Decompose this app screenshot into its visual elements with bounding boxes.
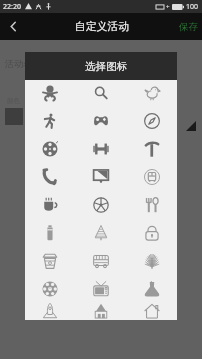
button[interactable]: icon0 bbox=[25, 79, 75, 107]
button[interactable]: icon2 bbox=[126, 79, 177, 107]
button[interactable]: icon3 bbox=[25, 107, 75, 135]
button[interactable]: icon14 bbox=[126, 191, 177, 219]
button[interactable]: icon13 bbox=[75, 191, 126, 219]
button[interactable]: Back bbox=[0, 13, 27, 40]
button[interactable]: icon7 bbox=[75, 135, 126, 163]
button[interactable]: 保存 bbox=[175, 21, 202, 33]
staticText: 100 bbox=[186, 2, 199, 12]
button[interactable]: icon24 bbox=[25, 303, 75, 319]
staticText: 自定义活动 bbox=[75, 20, 129, 34]
staticText: 保存 bbox=[179, 21, 198, 33]
button[interactable]: icon22 bbox=[75, 275, 126, 303]
button[interactable]: icon12 bbox=[25, 191, 75, 219]
button[interactable]: icon18 bbox=[25, 247, 75, 275]
staticText: 选择图标 bbox=[85, 60, 128, 73]
button[interactable]: icon17 bbox=[126, 219, 177, 247]
button[interactable]: icon26 bbox=[126, 303, 177, 319]
button[interactable]: icon19 bbox=[75, 247, 126, 275]
staticText: 22:20 bbox=[3, 2, 21, 12]
button[interactable]: icon9 bbox=[25, 163, 75, 191]
button[interactable]: icon21 bbox=[25, 275, 75, 303]
staticText: 活动名 bbox=[5, 58, 32, 69]
button[interactable]: icon5 bbox=[126, 107, 177, 135]
button[interactable]: icon8 bbox=[126, 135, 177, 163]
button[interactable]: icon16 bbox=[75, 219, 126, 247]
staticText: + bbox=[166, 3, 170, 11]
button[interactable]: icon15 bbox=[25, 219, 75, 247]
button[interactable]: icon20 bbox=[126, 247, 177, 275]
button[interactable]: icon6 bbox=[25, 135, 75, 163]
button[interactable]: icon4 bbox=[75, 107, 126, 135]
button[interactable]: icon11 bbox=[126, 163, 177, 191]
button[interactable]: icon25 bbox=[75, 303, 126, 319]
button[interactable]: icon1 bbox=[75, 79, 126, 107]
button[interactable]: icon10 bbox=[75, 163, 126, 191]
button[interactable]: icon23 bbox=[126, 275, 177, 303]
